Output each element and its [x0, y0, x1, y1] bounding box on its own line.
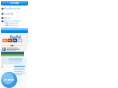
button[interactable]: See membership options: [1, 27, 28, 33]
staticText: ePayment: [4, 78, 14, 81]
button[interactable]: Site Tour: [1, 17, 27, 19]
button[interactable]: Meet Membership: [1, 7, 27, 10]
staticText: PayPal: [10, 35, 21, 39]
staticText: Join Today: [10, 2, 19, 4]
staticText: Leader View: [4, 13, 13, 15]
staticText: Meet Membership: [4, 8, 20, 10]
button[interactable]: Give your Thanks to our: [1, 20, 27, 26]
button[interactable]: Join Today: [1, 1, 28, 5]
staticText: Soldiers Overseas: [4, 22, 18, 24]
staticText: www.thanksusa.org: [4, 24, 18, 26]
staticText: Site Tour: [4, 17, 11, 19]
button[interactable]: Leader View: [1, 12, 27, 15]
staticText: See membership options: [1, 27, 18, 28]
staticText: Give your Thanks to our: [4, 20, 21, 22]
